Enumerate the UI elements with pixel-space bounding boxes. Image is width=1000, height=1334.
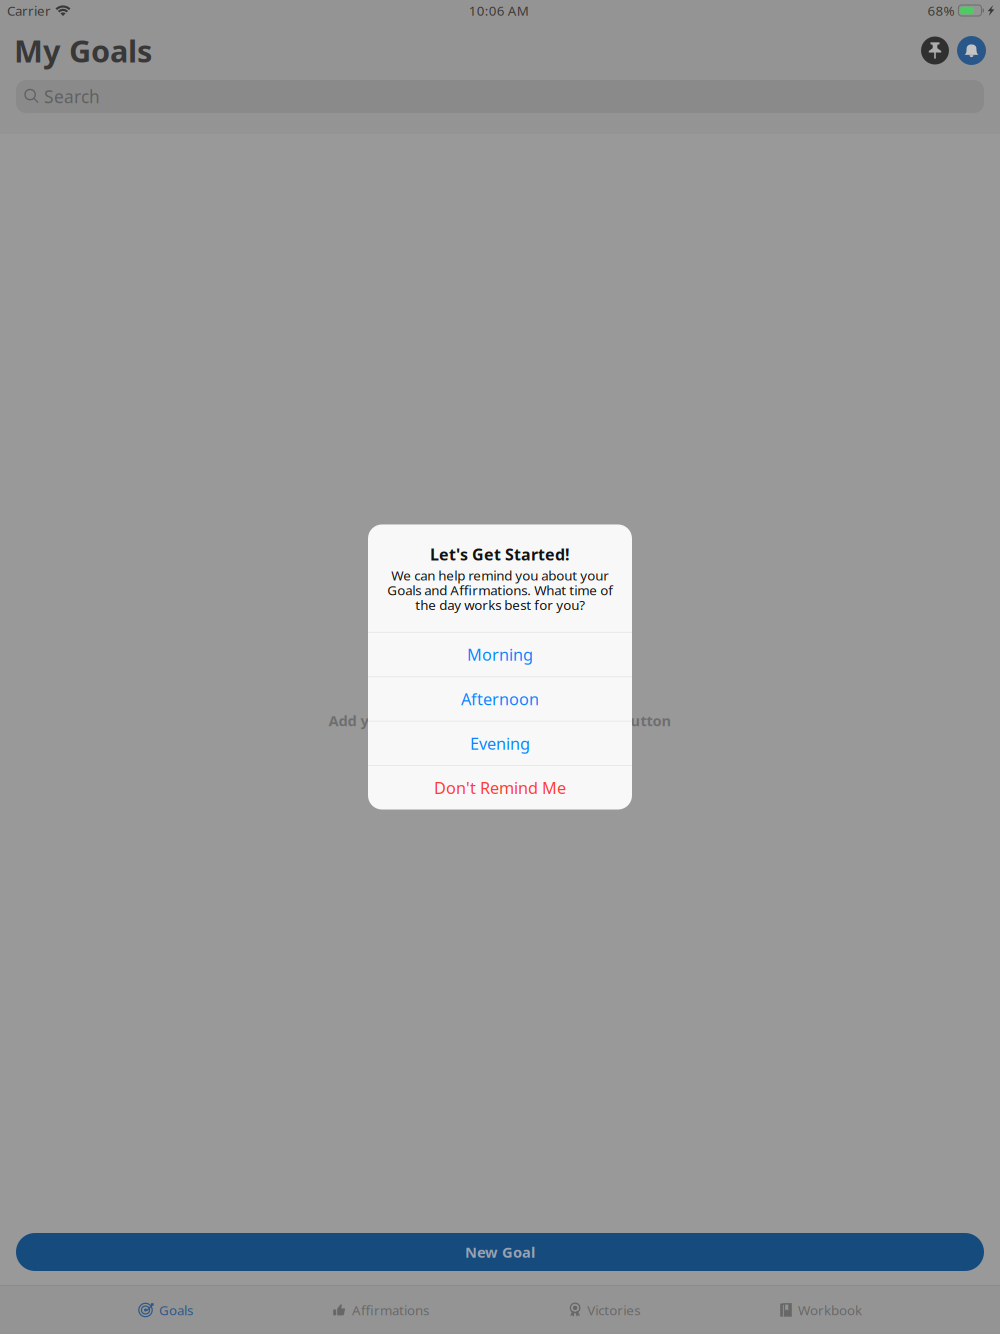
staticText: Let's Get Started! xyxy=(430,543,570,565)
staticText: New Goal xyxy=(465,1242,535,1262)
staticText: Add your first goal with the "New Goal" … xyxy=(328,710,671,730)
staticText: Carrier xyxy=(7,1,51,20)
button[interactable]: Reminders xyxy=(957,36,986,65)
staticText: Victories xyxy=(587,1301,640,1319)
staticText: Workbook xyxy=(798,1301,862,1319)
staticText: Goals xyxy=(159,1301,193,1319)
button[interactable]: Victories xyxy=(569,1293,640,1327)
staticText: My Goals xyxy=(14,30,152,71)
staticText: Don't Remind Me xyxy=(434,777,566,799)
button[interactable]: Goals xyxy=(138,1293,193,1327)
button[interactable]: Afternoon xyxy=(368,677,632,721)
staticText: Affirmations xyxy=(352,1301,429,1319)
staticText: Evening xyxy=(470,732,530,754)
button[interactable]: Don't Remind Me xyxy=(368,766,632,809)
button[interactable]: Search xyxy=(16,80,984,113)
button[interactable]: Evening xyxy=(368,721,632,765)
button[interactable]: Pinned goals xyxy=(921,36,949,64)
staticText: 10:06 AM xyxy=(469,1,529,20)
button[interactable]: New Goal xyxy=(16,1233,984,1271)
button[interactable]: Workbook xyxy=(780,1293,862,1327)
staticText: Morning xyxy=(467,643,533,666)
staticText: Afternoon xyxy=(461,688,539,710)
button[interactable]: Affirmations xyxy=(333,1293,429,1327)
staticText: We can help remind you about your Goals … xyxy=(387,566,613,614)
staticText: 68% xyxy=(927,1,954,20)
button[interactable]: Morning xyxy=(368,633,632,676)
staticText: Search xyxy=(44,85,100,108)
